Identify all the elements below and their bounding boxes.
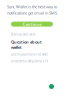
button[interactable]: Compose: [49, 84, 54, 89]
staticText: Settings and more: [11, 33, 36, 36]
staticText: Continue: [22, 21, 41, 27]
staticText: Sync Wallet is the best way to: [7, 4, 57, 9]
staticText: consectetur adipiscing elit: [11, 59, 48, 63]
staticText: Question about wallet: [11, 39, 42, 50]
staticText: Lorem ipsum dolor sit amet: [11, 53, 48, 56]
staticText: notifications get email in SMS: [7, 10, 57, 16]
button[interactable]: Continue: [11, 22, 53, 27]
